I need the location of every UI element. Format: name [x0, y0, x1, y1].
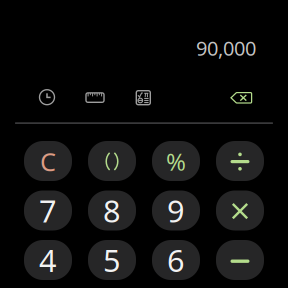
- button[interactable]: Percent: [152, 141, 200, 181]
- button[interactable]: 5: [88, 240, 136, 280]
- button[interactable]: 9: [152, 190, 200, 230]
- staticText: 7: [39, 190, 57, 231]
- button[interactable]: Minus: [216, 240, 264, 280]
- button[interactable]: 7: [24, 190, 72, 230]
- staticText: 90,000: [196, 35, 256, 61]
- button[interactable]: History: [36, 86, 58, 108]
- staticText: 6: [167, 240, 185, 280]
- staticText: 9: [167, 190, 185, 231]
- button[interactable]: Divide: [216, 141, 264, 181]
- button[interactable]: Delete: [227, 89, 255, 107]
- staticText: C: [40, 145, 56, 178]
- staticText: 8: [103, 190, 121, 231]
- button[interactable]: 8: [88, 190, 136, 230]
- button[interactable]: Scientific functions: [132, 87, 154, 109]
- staticText: %: [166, 146, 186, 177]
- button[interactable]: Parentheses: [88, 141, 136, 181]
- button[interactable]: Multiply: [216, 190, 264, 230]
- button[interactable]: 6: [152, 240, 200, 280]
- staticText: 4: [39, 240, 57, 280]
- button[interactable]: 4: [24, 240, 72, 280]
- staticText: 5: [103, 240, 121, 280]
- button[interactable]: Clear: [24, 141, 72, 181]
- button[interactable]: Unit converter: [84, 90, 106, 106]
